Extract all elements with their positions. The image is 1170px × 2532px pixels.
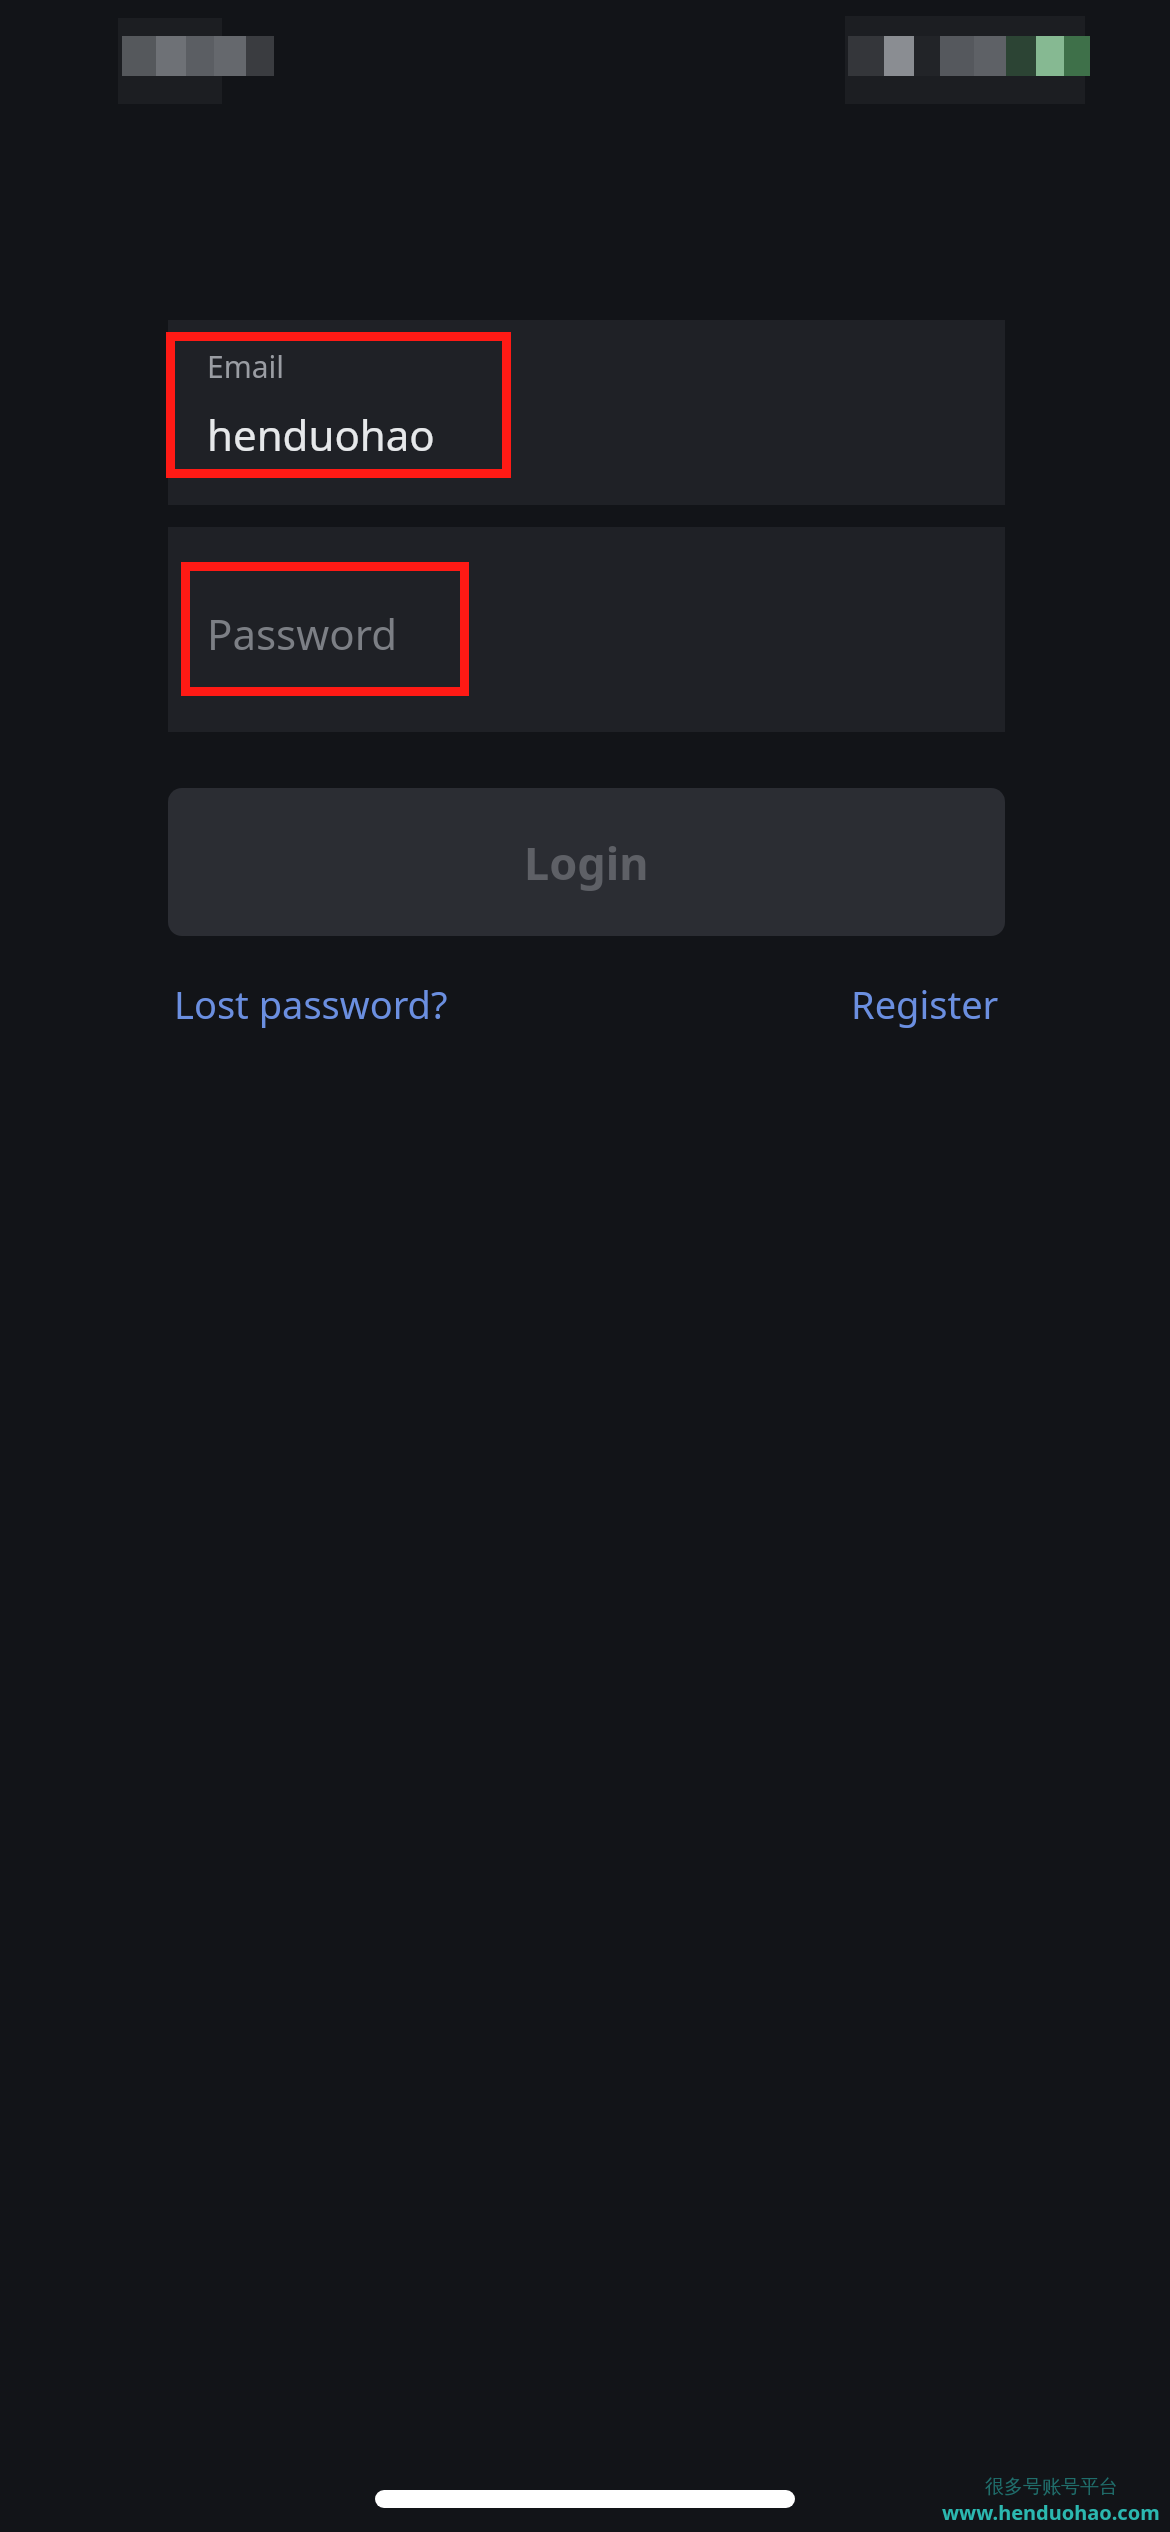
staticText: 很多号账号平台 [985,2475,1118,2499]
staticText: Email [207,346,285,387]
staticText: Register [851,978,999,1030]
button[interactable]: Login [168,788,1005,936]
staticText: Login [524,832,649,893]
staticText: henduohao [207,406,435,463]
button[interactable]: Email [168,320,1005,505]
button[interactable]: Register [845,970,1005,1038]
button[interactable]: Password [168,527,1005,732]
staticText: Lost password? [174,978,448,1030]
button[interactable]: Lost password? [168,970,454,1038]
staticText: www.henduohao.com [942,2499,1160,2526]
staticText: Password [207,605,397,662]
